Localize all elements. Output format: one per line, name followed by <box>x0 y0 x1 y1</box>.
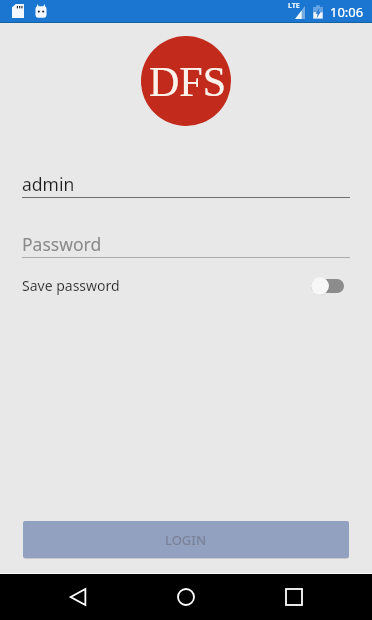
staticText: Save password <box>22 276 120 295</box>
button[interactable]: Back <box>55 574 101 620</box>
staticText: LTE <box>288 1 300 11</box>
button[interactable]: Save password <box>22 270 350 300</box>
staticText: LOGIN <box>165 531 207 549</box>
button[interactable]: LOGIN <box>23 521 349 558</box>
staticText: admin <box>22 172 75 196</box>
button[interactable]: Recents <box>271 574 317 620</box>
staticText: Password <box>22 232 102 256</box>
staticText: DFS <box>149 59 227 106</box>
staticText: 10:06 <box>330 3 364 21</box>
button[interactable]: Home <box>163 574 209 620</box>
